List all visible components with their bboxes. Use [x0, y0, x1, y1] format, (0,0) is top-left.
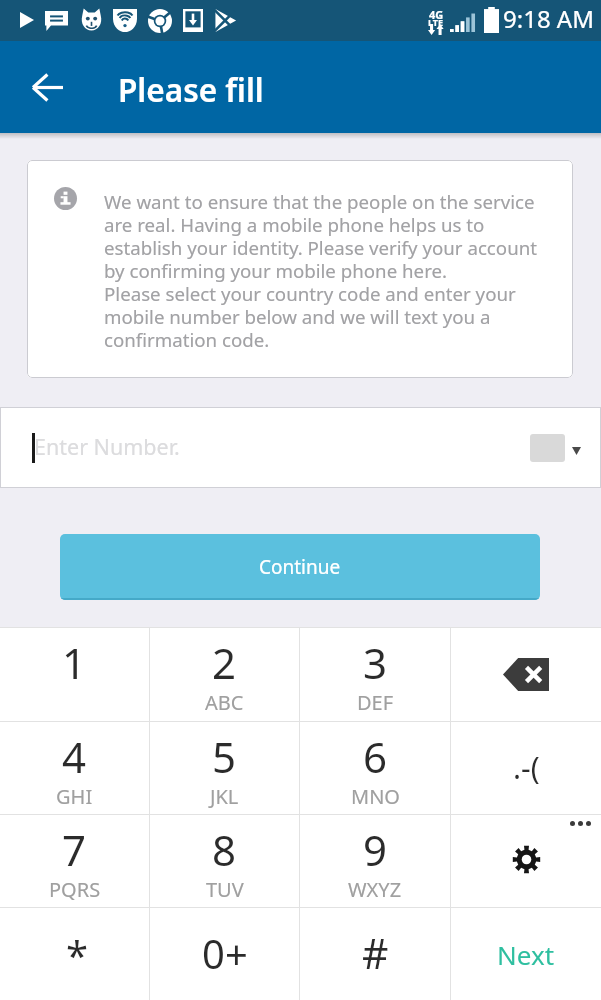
staticText: 7	[62, 821, 87, 878]
button[interactable]: Star	[0, 908, 149, 1000]
button[interactable]: 8	[150, 815, 299, 907]
staticText: #	[362, 925, 389, 981]
staticText: JKL	[210, 783, 239, 810]
staticText: MNO	[351, 783, 400, 810]
staticText: 8	[212, 821, 237, 878]
button[interactable]: 7	[0, 815, 149, 907]
button[interactable]: Zero plus	[150, 908, 299, 1000]
staticText: 4G	[429, 7, 444, 22]
button[interactable]: Emoticon	[451, 722, 601, 814]
staticText: TUV	[206, 876, 244, 903]
staticText: Please fill	[118, 68, 264, 111]
staticText: 3	[363, 634, 388, 691]
button[interactable]: 3	[300, 628, 450, 721]
staticText: PQRS	[49, 876, 101, 903]
staticText: DEF	[357, 689, 394, 716]
button[interactable]: Continue	[60, 534, 540, 600]
staticText: Next	[497, 937, 555, 972]
button[interactable]: Back	[18, 57, 78, 117]
staticText: 2	[212, 634, 237, 691]
staticText: We want to ensure that the people on the…	[104, 189, 573, 352]
staticText: 0+	[202, 926, 248, 980]
button[interactable]: 1	[0, 628, 149, 721]
staticText: .-(	[513, 747, 540, 788]
staticText: ABC	[205, 689, 244, 716]
button[interactable]: Backspace	[451, 628, 601, 721]
button[interactable]: Select country code	[530, 434, 581, 462]
staticText: 1	[62, 634, 87, 691]
staticText: *	[66, 927, 89, 981]
staticText: Continue	[259, 554, 341, 580]
button[interactable]: 9	[300, 815, 450, 907]
staticText: LTE	[428, 16, 444, 28]
button[interactable]: 4	[0, 722, 149, 814]
button[interactable]: Next	[451, 908, 601, 1000]
staticText: 5	[212, 728, 237, 785]
staticText: GHI	[56, 783, 93, 810]
button[interactable]: 2	[150, 628, 299, 721]
staticText: 6	[363, 728, 388, 785]
button[interactable]: Settings	[451, 815, 601, 907]
button[interactable]: Enter Number.	[0, 407, 601, 488]
button[interactable]: 5	[150, 722, 299, 814]
button[interactable]: 6	[300, 722, 450, 814]
staticText: Enter Number.	[34, 432, 180, 461]
staticText: WXYZ	[348, 876, 402, 903]
staticText: 4	[62, 728, 87, 785]
staticText: 9:18 AM	[503, 2, 594, 35]
staticText: 9	[363, 821, 388, 878]
button[interactable]: Hash	[300, 908, 450, 1000]
